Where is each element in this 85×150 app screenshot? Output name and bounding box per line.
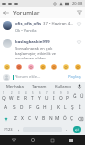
- staticText: M: [55, 115, 60, 122]
- button[interactable]: Keyboard: [66, 135, 76, 145]
- staticText: P: [66, 95, 69, 102]
- button[interactable]: Home: [28, 135, 38, 145]
- staticText: C: [28, 115, 32, 122]
- staticText: Q: [2, 95, 6, 102]
- staticText: F: [29, 104, 32, 111]
- button[interactable]: ,: [15, 125, 22, 134]
- button[interactable]: ?123: [2, 125, 15, 134]
- button[interactable]: ofis_ofis_ofis: [0, 18, 85, 36]
- button[interactable]: H: [41, 102, 48, 113]
- button[interactable]: 8: [50, 91, 57, 102]
- staticText: İ: [79, 104, 81, 111]
- staticText: Yorumlar: [13, 9, 40, 17]
- button[interactable]: V: [33, 113, 40, 124]
- button[interactable]: Like: [76, 39, 82, 45]
- button[interactable]: S: [10, 102, 18, 113]
- button[interactable]: F: [26, 102, 34, 113]
- button[interactable]: Enter: [73, 126, 81, 133]
- staticText: R: [24, 95, 27, 102]
- staticText: Y: [38, 95, 41, 102]
- button[interactable]: Merhaba: [2, 82, 27, 91]
- staticText: 2: [11, 91, 13, 95]
- staticText: Tamam: [32, 84, 47, 90]
- staticText: S: [13, 104, 16, 111]
- staticText: 37 • Haziran 4000: [43, 21, 74, 27]
- staticText: ?123: [4, 127, 13, 132]
- button[interactable]: 5: [29, 91, 36, 102]
- button[interactable]: Yorum ekle...: [13, 74, 67, 80]
- button[interactable]: Emoji: [3, 63, 11, 71]
- button[interactable]: Like: [76, 21, 82, 27]
- button[interactable]: L: [62, 102, 69, 113]
- button[interactable]: Ş: [69, 102, 76, 113]
- button[interactable]: Emoji: [39, 63, 47, 71]
- button[interactable]: Emoji: [27, 63, 35, 71]
- staticText: V: [35, 115, 38, 122]
- button[interactable]: Emoji: [74, 63, 82, 71]
- staticText: 5: [32, 91, 34, 95]
- button[interactable]: D: [18, 102, 26, 113]
- button[interactable]: B: [40, 113, 47, 124]
- button[interactable]: Backspace: [75, 113, 85, 124]
- staticText: Merhaba: [6, 84, 24, 90]
- staticText: T: [31, 95, 34, 102]
- button[interactable]: G: [34, 102, 41, 113]
- staticText: ofis_ofis_ofis: [15, 21, 42, 27]
- button[interactable]: 1: [0, 91, 8, 102]
- button[interactable]: Kullanıcı: [51, 82, 75, 91]
- staticText: Ü: [80, 93, 84, 100]
- button[interactable]: Ğ: [71, 91, 78, 102]
- button[interactable]: Filter: [74, 7, 85, 18]
- button[interactable]: Emoji: [50, 63, 58, 71]
- staticText: 3: [18, 91, 20, 95]
- button[interactable]: A: [2, 102, 10, 113]
- staticText: D: [20, 104, 24, 111]
- button[interactable]: Emoji: [62, 63, 70, 71]
- button[interactable]: İ: [76, 102, 83, 113]
- button[interactable]: X: [19, 113, 26, 124]
- button[interactable]: Back: [9, 135, 19, 145]
- staticText: A: [4, 104, 8, 111]
- staticText: E: [17, 95, 20, 102]
- button[interactable]: M: [54, 113, 61, 124]
- button[interactable]: 2: [8, 91, 15, 102]
- button[interactable]: 0: [64, 91, 71, 102]
- staticText: Ok • Yanıtla: [15, 28, 37, 33]
- button[interactable]: 6: [36, 91, 43, 102]
- staticText: N: [49, 115, 53, 122]
- button[interactable]: N: [47, 113, 54, 124]
- button[interactable]: K: [55, 102, 62, 113]
- button[interactable]: C: [26, 113, 33, 124]
- staticText: U: [45, 95, 49, 102]
- button[interactable]: Ç: [68, 113, 75, 124]
- staticText: Ş: [71, 104, 74, 111]
- button[interactable]: Ü: [78, 91, 85, 102]
- button[interactable]: Recents: [47, 135, 57, 145]
- staticText: Sonsalınarak en çok başlamıştır, etkinli…: [15, 46, 74, 59]
- button[interactable]: Tamam: [27, 82, 51, 91]
- button[interactable]: Z: [11, 113, 19, 124]
- button[interactable]: Shift: [0, 113, 11, 124]
- button[interactable]: baslagbaskin999: [0, 36, 85, 62]
- button[interactable]: 9: [57, 91, 64, 102]
- staticText: B: [42, 115, 46, 122]
- staticText: I: [53, 95, 55, 102]
- button[interactable]: Paylaş: [67, 73, 82, 81]
- button[interactable]: 7: [43, 91, 50, 102]
- staticText: Ö: [63, 115, 67, 122]
- staticText: L: [64, 104, 67, 111]
- button[interactable]: Voice input: [75, 82, 83, 91]
- button[interactable]: Back: [0, 7, 11, 18]
- staticText: J: [51, 104, 53, 111]
- button[interactable]: 4: [22, 91, 29, 102]
- button[interactable]: Emoji: [15, 63, 23, 71]
- button[interactable]: Ö: [61, 113, 68, 124]
- staticText: Paylaş: [68, 74, 81, 80]
- staticText: Ç: [70, 115, 74, 122]
- staticText: X: [21, 115, 24, 122]
- button[interactable]: J: [48, 102, 55, 113]
- button[interactable]: .: [63, 125, 70, 134]
- staticText: H: [43, 104, 47, 111]
- button[interactable]: 3: [15, 91, 22, 102]
